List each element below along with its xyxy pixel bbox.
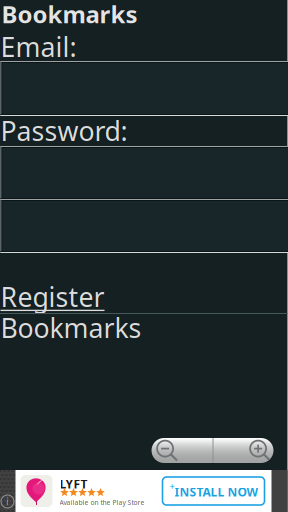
staticText: Available on the Play Store: [59, 498, 144, 507]
staticText: Password:: [0, 113, 127, 148]
button[interactable]: Zoom out: [151, 438, 212, 463]
staticText: i: [6, 494, 9, 508]
staticText: +: [169, 480, 174, 492]
staticText: Bookmarks: [1, 0, 137, 30]
button[interactable]: Zoom in: [212, 438, 273, 463]
staticText: Register: [0, 279, 104, 314]
staticText: LYFT: [59, 476, 87, 492]
staticText: INSTALL NOW: [174, 484, 258, 500]
staticText: Email:: [0, 29, 76, 64]
button[interactable]: Register: [0, 0, 103, 35]
staticText: Bookmarks: [0, 310, 141, 345]
button[interactable]: INSTALL NOW: [162, 477, 264, 505]
